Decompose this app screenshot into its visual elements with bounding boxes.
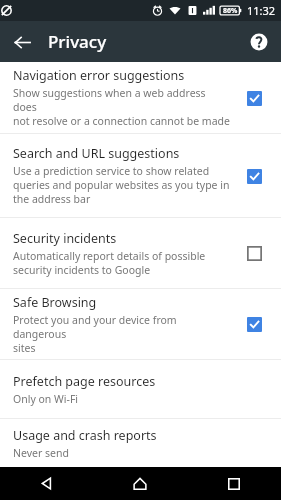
- button[interactable]: Help: [245, 28, 273, 56]
- staticText: the address bar: [13, 192, 91, 206]
- button[interactable]: Prefetch page resources: [0, 360, 281, 418]
- button[interactable]: Search and URL suggestions: [0, 134, 281, 217]
- staticText: Navigation error suggestions: [13, 67, 185, 84]
- staticText: sites: [13, 341, 36, 355]
- staticText: queries and popular websites as you type…: [13, 178, 230, 192]
- staticText: Protect you and your device from dangero…: [13, 313, 231, 341]
- button[interactable]: Back: [0, 467, 93, 500]
- button[interactable]: Back: [8, 28, 36, 56]
- staticText: Search and URL suggestions: [13, 145, 180, 162]
- staticText: not resolve or a connection cannot be ma…: [13, 114, 230, 128]
- staticText: Security incidents: [13, 230, 117, 247]
- staticText: 86%: [223, 6, 238, 16]
- staticText: security incidents to Google: [13, 263, 151, 277]
- staticText: Never send: [13, 446, 69, 460]
- staticText: Privacy: [48, 30, 107, 53]
- staticText: 11:32: [247, 3, 276, 18]
- button[interactable]: Usage and crash reports: [0, 419, 281, 467]
- staticText: Safe Browsing: [13, 294, 97, 311]
- button[interactable]: Home: [93, 467, 187, 500]
- button[interactable]: Recent apps: [187, 467, 281, 500]
- staticText: Show suggestions when a web address does: [13, 86, 231, 114]
- button[interactable]: Navigation error suggestions: [0, 62, 281, 133]
- button[interactable]: Checked: [239, 83, 269, 113]
- staticText: Use a prediction service to show related: [13, 164, 210, 178]
- button[interactable]: Safe Browsing: [0, 289, 281, 359]
- button[interactable]: Unchecked: [239, 238, 269, 268]
- staticText: Usage and crash reports: [13, 427, 157, 444]
- button[interactable]: Checked: [239, 309, 269, 339]
- staticText: Automatically report details of possible: [13, 249, 206, 263]
- staticText: Prefetch page resources: [13, 373, 156, 390]
- button[interactable]: Security incidents: [0, 218, 281, 288]
- staticText: Only on Wi-Fi: [13, 392, 79, 406]
- button[interactable]: Checked: [239, 161, 269, 191]
